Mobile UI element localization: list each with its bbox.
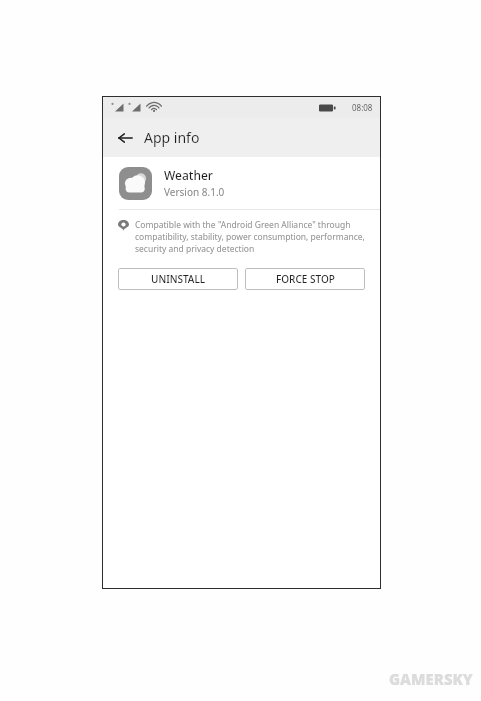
- staticText: UNINSTALL: [151, 272, 206, 286]
- staticText: Version 8.1.0: [164, 185, 225, 199]
- staticText: Weather: [164, 167, 213, 183]
- staticText: GAMERSKY: [389, 669, 473, 689]
- staticText: Compatible with the "Android Green Allia…: [135, 219, 367, 255]
- button[interactable]: Weather: [102, 157, 381, 209]
- staticText: FORCE STOP: [276, 272, 335, 286]
- button[interactable]: UNINSTALL: [118, 268, 238, 290]
- button[interactable]: Back: [112, 125, 138, 151]
- staticText: App info: [144, 128, 200, 147]
- staticText: 08:08: [352, 102, 373, 113]
- button[interactable]: FORCE STOP: [245, 268, 365, 290]
